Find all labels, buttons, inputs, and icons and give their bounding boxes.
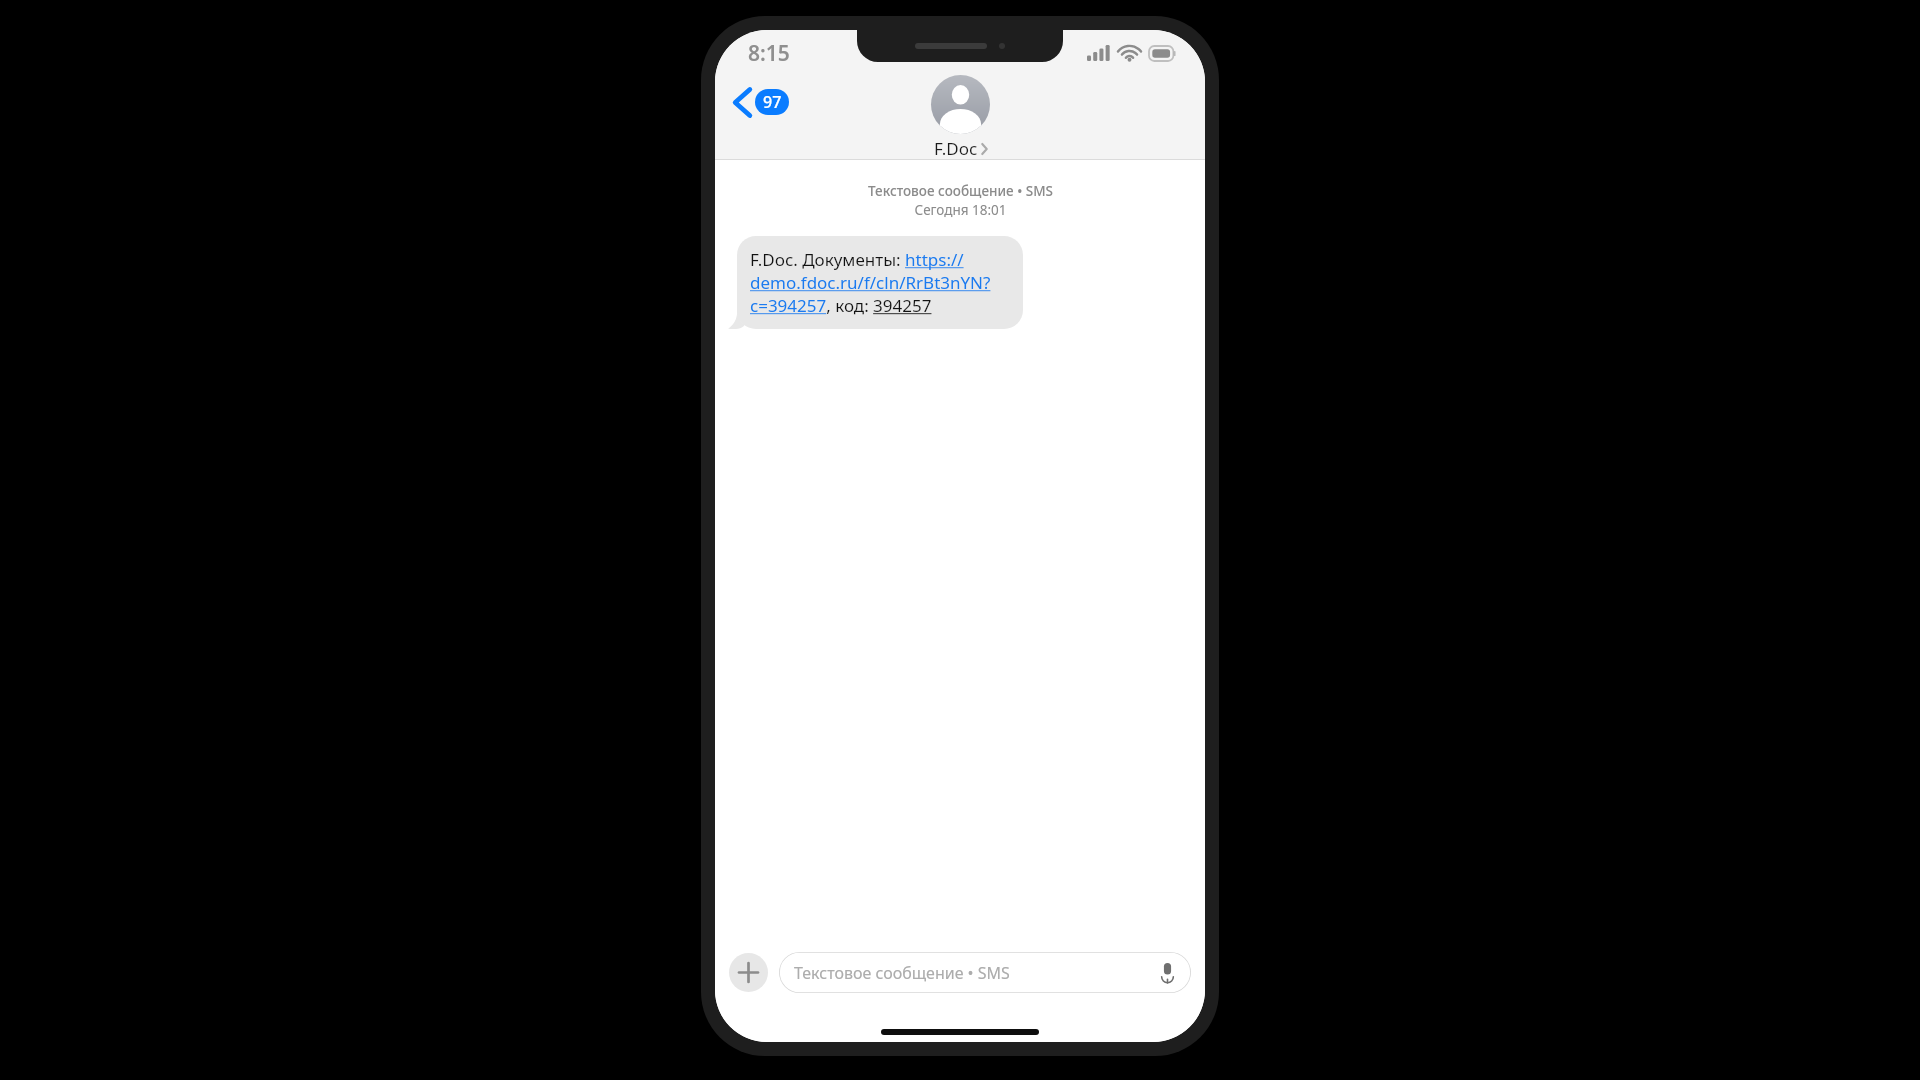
staticText: Текстовое сообщение • SMS [868,182,1053,200]
staticText: F.Doc [934,137,978,160]
staticText: 97 [763,91,782,113]
staticText: Текстовое сообщение • SMS [794,962,1010,984]
staticText: Сегодня 18:01 [914,201,1007,219]
button[interactable]: F.Doc. Документы: https://demo.fdoc.ru/f… [737,236,1023,329]
button[interactable]: F.Doc [931,75,990,160]
button[interactable]: Back, 97 unread [723,76,800,128]
button[interactable]: Текстовое сообщение • SMS [779,952,1191,993]
button[interactable]: Add attachment [729,953,768,992]
staticText: F.Doc. Документы: https://demo.fdoc.ru/f… [750,248,1012,317]
staticText: 8:15 [748,39,790,68]
button[interactable]: Dictate [1155,961,1179,985]
